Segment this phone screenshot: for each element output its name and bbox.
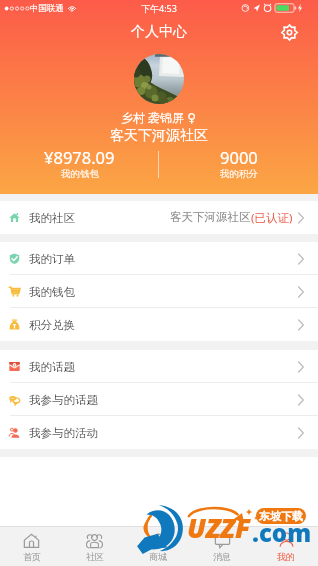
staticText: ¥8978.09 xyxy=(44,146,115,168)
staticText: 我参与的话题 xyxy=(29,393,98,407)
staticText: .com xyxy=(252,516,312,549)
staticText: 我参与的活动 xyxy=(29,426,98,440)
button[interactable]: 积分兑换 xyxy=(0,308,318,341)
button[interactable]: 我的话题 xyxy=(0,350,318,383)
staticText: 客天下河源社区 xyxy=(170,210,251,224)
button[interactable]: 首页 xyxy=(0,527,63,566)
staticText: 首页 xyxy=(23,551,41,562)
staticText: 我的订单 xyxy=(29,252,75,266)
button[interactable]: 我参与的活动 xyxy=(0,416,318,449)
staticText: 我的钱包 xyxy=(61,168,99,180)
staticText: 中国联通 xyxy=(30,3,64,14)
staticText: 下午4:53 xyxy=(141,2,177,14)
staticText: 乡村 袭锦屏 ♀ xyxy=(121,109,197,125)
staticText: 我的钱包 xyxy=(29,285,75,299)
staticText: 我的话题 xyxy=(29,360,75,374)
staticText: 我的社区 xyxy=(29,211,75,225)
button[interactable]: Settings xyxy=(279,22,299,42)
staticText: 个人中心 xyxy=(131,23,187,41)
button[interactable]: 社区 xyxy=(63,527,126,566)
staticText: 积分兑换 xyxy=(29,318,75,332)
staticText: UZZF xyxy=(187,509,251,546)
staticText: 9000 xyxy=(220,146,258,168)
staticText: 客天下河源社区 xyxy=(110,127,208,145)
button[interactable]: 我的 xyxy=(254,527,318,566)
button[interactable]: 我的钱包 xyxy=(0,275,318,308)
staticText: 我的积分 xyxy=(220,168,258,180)
staticText: (已认证) xyxy=(251,210,293,226)
button[interactable]: Avatar xyxy=(134,54,184,104)
button[interactable]: 消息 xyxy=(190,527,254,566)
button[interactable]: 我的社区 xyxy=(0,201,318,234)
staticText: 我的 xyxy=(277,551,295,562)
button[interactable]: 我的订单 xyxy=(0,242,318,275)
button[interactable]: 商城 xyxy=(126,527,190,566)
staticText: 东坡下载 xyxy=(259,509,303,523)
button[interactable]: 我参与的话题 xyxy=(0,383,318,416)
staticText: 社区 xyxy=(86,551,104,562)
staticText: 商城 xyxy=(149,551,167,562)
staticText: 消息 xyxy=(213,551,231,562)
